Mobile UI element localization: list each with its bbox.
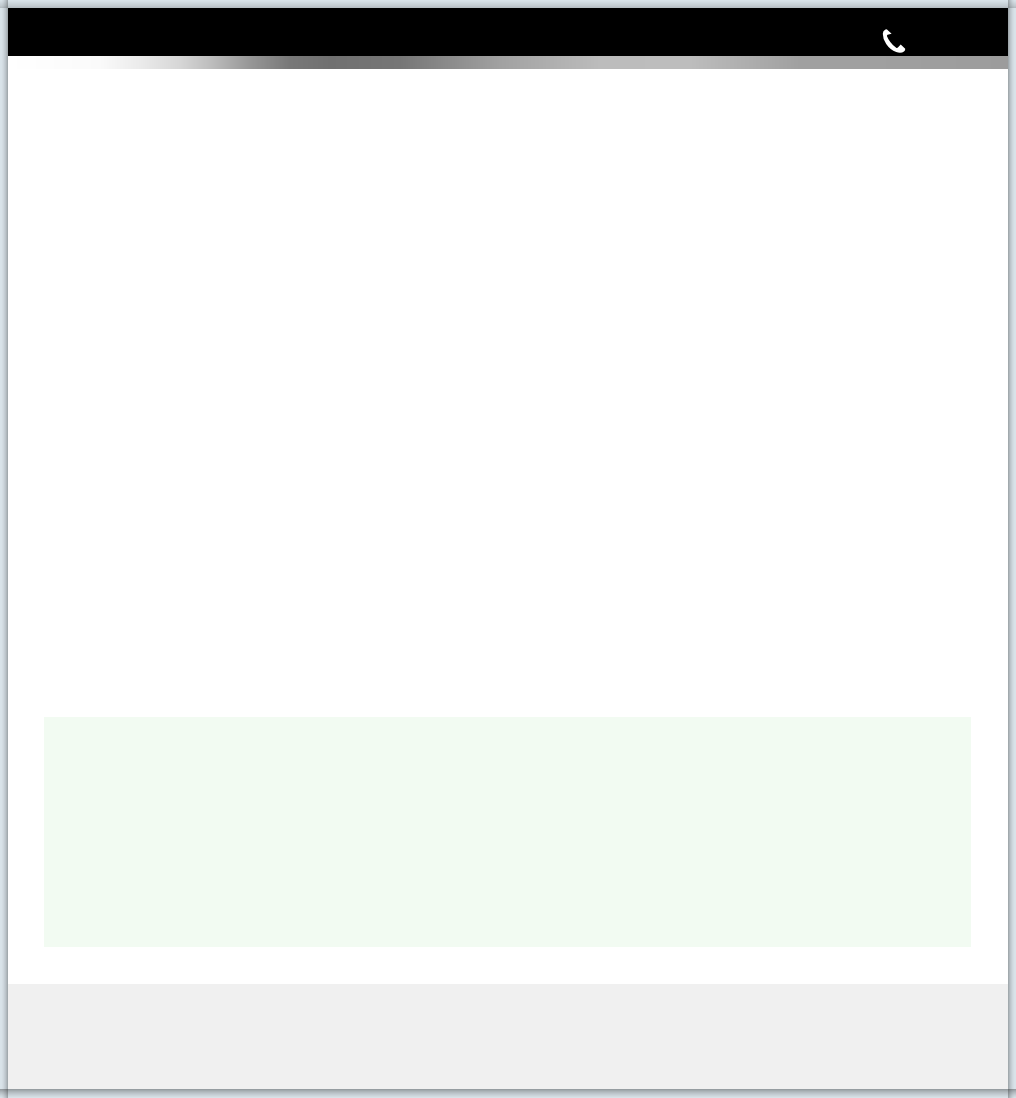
button[interactable]: Call xyxy=(872,19,916,63)
